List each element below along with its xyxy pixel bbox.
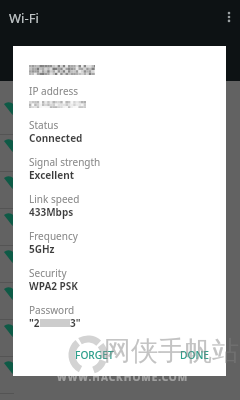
staticText: IP address xyxy=(29,84,79,98)
staticText: 网侠手帆站 xyxy=(104,334,239,368)
staticText: Frequency xyxy=(29,229,78,243)
button[interactable]: FORGET xyxy=(70,343,119,367)
staticText: Signal strength xyxy=(29,155,101,169)
staticText: Connected xyxy=(29,131,83,145)
staticText: 433Mbps xyxy=(29,205,74,219)
staticText: WWW.HACKHOME.COM xyxy=(57,370,189,384)
button[interactable]: DONE xyxy=(175,343,215,367)
staticText: Status xyxy=(29,118,59,132)
staticText: Wi-Fi xyxy=(9,9,39,27)
staticText: WPA2 PSK xyxy=(29,279,78,293)
button[interactable]: More options xyxy=(219,7,239,27)
staticText: DONE xyxy=(180,348,210,362)
staticText: "2 xyxy=(29,316,40,330)
staticText: 5GHz xyxy=(29,242,55,256)
staticText: Password xyxy=(29,303,75,317)
button[interactable] xyxy=(0,0,240,46)
staticText: Link speed xyxy=(29,192,80,206)
staticText: FORGET xyxy=(75,348,114,362)
staticText: Excellent xyxy=(29,168,75,182)
staticText: 3" xyxy=(70,316,81,330)
staticText: Security xyxy=(29,266,67,280)
